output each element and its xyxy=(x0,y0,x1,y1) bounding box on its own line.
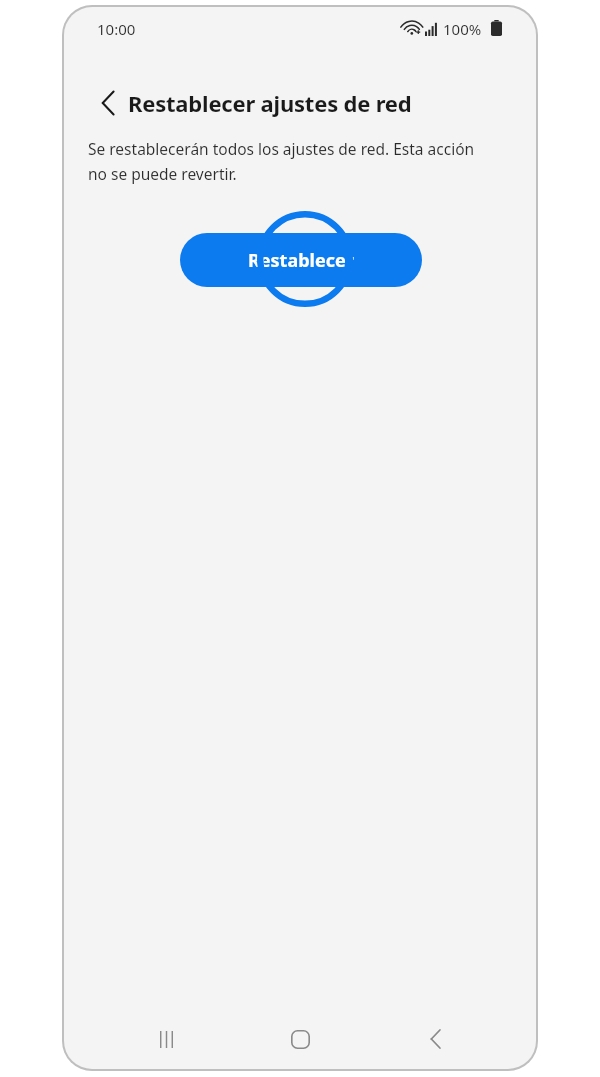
button[interactable]: Back xyxy=(86,79,130,127)
button[interactable]: Home xyxy=(278,1017,322,1061)
staticText: Se restablecerán todos los ajustes de re… xyxy=(88,138,488,184)
staticText: Restablecer xyxy=(248,248,354,273)
staticText: Restablecer ajustes de red xyxy=(128,88,412,118)
staticText: 100% xyxy=(443,19,482,39)
button[interactable]: Back xyxy=(413,1017,457,1061)
button[interactable]: Recent apps xyxy=(144,1017,188,1061)
staticText: 10:00 xyxy=(97,19,136,39)
button[interactable]: Restablecer xyxy=(180,233,422,287)
